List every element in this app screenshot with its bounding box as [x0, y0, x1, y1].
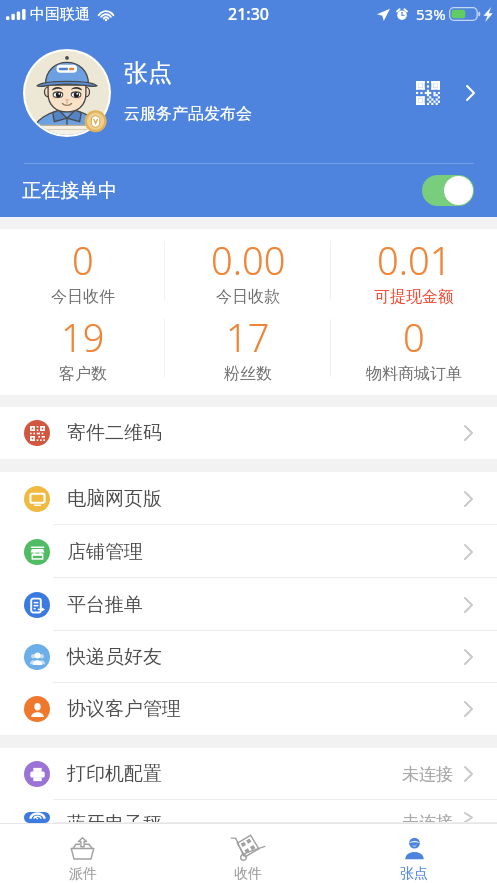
button[interactable]: 快递员好友 [0, 631, 497, 683]
staticText: 平台推单 [67, 593, 143, 617]
staticText: 未连接 [402, 812, 453, 823]
staticText: 可提现金额 [374, 287, 454, 307]
button[interactable]: 0 [331, 309, 497, 386]
button[interactable]: 蓝牙电子秤 [0, 800, 497, 823]
staticText: 中国联通 [30, 5, 90, 24]
button[interactable]: 19 [0, 309, 165, 386]
staticText: 粉丝数 [224, 364, 272, 384]
staticText: 今日收款 [216, 287, 280, 307]
staticText: 电脑网页版 [67, 487, 162, 511]
staticText: 53% [416, 4, 446, 24]
button[interactable]: 平台推单 [0, 578, 497, 631]
button[interactable]: 0.01 [331, 232, 497, 309]
staticText: 张点 [124, 58, 172, 88]
staticText: 今日收件 [51, 287, 115, 307]
button[interactable]: 接单状态开关 [422, 175, 474, 206]
staticText: 正在接单中 [22, 179, 117, 203]
button[interactable]: 0.00 [165, 232, 331, 309]
staticText: 快递员好友 [67, 645, 162, 669]
staticText: 0 [403, 311, 425, 363]
staticText: 云服务产品发布会 [124, 104, 252, 124]
button[interactable]: 个人资料 [457, 80, 483, 106]
staticText: 寄件二维码 [67, 421, 162, 445]
staticText: 张点 [400, 865, 428, 883]
staticText: 蓝牙电子秤 [67, 812, 162, 823]
staticText: 客户数 [59, 364, 107, 384]
button[interactable]: 张点 [331, 824, 497, 883]
staticText: 21:30 [228, 3, 269, 25]
staticText: 派件 [69, 865, 97, 883]
button[interactable]: 正在接单中 [0, 164, 497, 217]
button[interactable]: 打印机配置 [0, 748, 497, 800]
staticText: 收件 [234, 865, 262, 883]
button[interactable]: 张点 [0, 28, 497, 163]
button[interactable]: 我的二维码 [408, 73, 448, 113]
button[interactable]: 0 [0, 232, 165, 309]
staticText: 物料商城订单 [366, 364, 462, 384]
button[interactable]: 17 [165, 309, 331, 386]
button[interactable]: 派件 [0, 824, 165, 883]
staticText: 0.00 [211, 234, 286, 286]
button[interactable]: 协议客户管理 [0, 683, 497, 735]
button[interactable]: 收件 [165, 824, 331, 883]
staticText: 17 [226, 311, 270, 363]
staticText: 店铺管理 [67, 540, 143, 564]
button[interactable]: 电脑网页版 [0, 472, 497, 525]
button[interactable]: 店铺管理 [0, 525, 497, 578]
button[interactable]: 寄件二维码 [0, 407, 497, 459]
staticText: 协议客户管理 [67, 697, 181, 721]
staticText: 0.01 [377, 234, 452, 286]
staticText: 未连接 [402, 764, 453, 785]
staticText: 0 [72, 234, 94, 286]
staticText: 19 [61, 311, 105, 363]
staticText: 打印机配置 [67, 762, 162, 786]
